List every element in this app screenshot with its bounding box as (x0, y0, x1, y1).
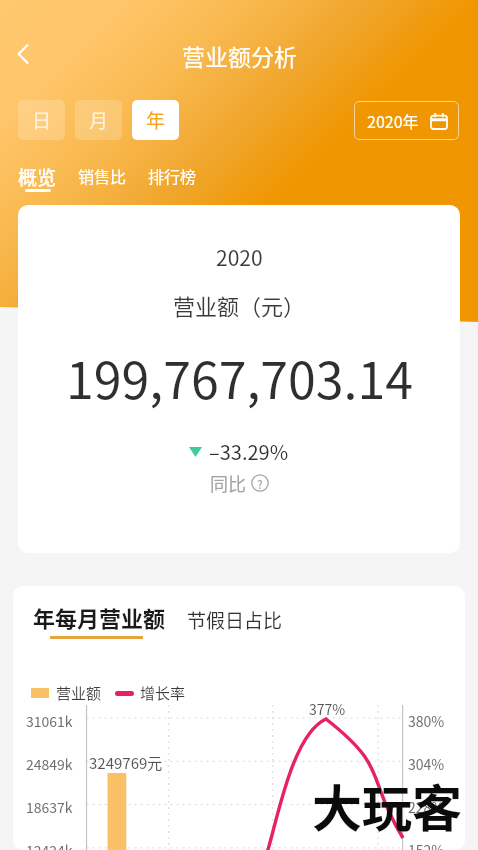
staticText: 营业额（元） (173, 289, 306, 321)
staticText: 日 (32, 106, 52, 134)
staticText: 节假日占比 (187, 606, 283, 634)
staticText: 3249769元 (89, 752, 163, 774)
staticText: 概览 (18, 163, 57, 191)
staticText: 排行榜 (148, 164, 197, 187)
staticText: 228% (408, 797, 445, 817)
staticText: –33.29% (209, 437, 289, 466)
staticText: 24849k (26, 754, 73, 774)
button[interactable]: 年 (132, 100, 179, 140)
staticText: 380% (408, 711, 445, 731)
button[interactable]: 排行榜 (148, 163, 197, 186)
button[interactable]: 概览 (18, 163, 57, 194)
staticText: 营业额分析 (182, 39, 297, 72)
button[interactable]: 销售比 (78, 163, 127, 186)
staticText: 同比 (210, 470, 246, 496)
staticText: 2020 (216, 242, 263, 272)
staticText: 31061k (26, 711, 73, 731)
staticText: 304% (408, 754, 445, 774)
staticText: 年每月营业额 (33, 601, 166, 633)
staticText: 2020年 (367, 109, 419, 132)
staticText: 18637k (26, 797, 73, 817)
button[interactable]: 2020年 (354, 101, 459, 140)
button[interactable]: 日 (18, 100, 65, 140)
staticText: 152% (408, 840, 445, 850)
button[interactable]: 月 (75, 100, 122, 140)
staticText: 年 (146, 106, 166, 134)
staticText: ? (257, 475, 263, 492)
button[interactable]: Back (1, 32, 45, 76)
staticText: 377% (309, 699, 346, 719)
staticText: 月 (89, 106, 109, 134)
staticText: 增长率 (140, 682, 186, 704)
staticText: 销售比 (78, 164, 127, 187)
staticText: 199,767,703.14 (66, 341, 413, 413)
staticText: 12424k (26, 840, 73, 850)
staticText: 营业额 (56, 682, 102, 704)
staticText: 大玩客 (312, 769, 462, 841)
